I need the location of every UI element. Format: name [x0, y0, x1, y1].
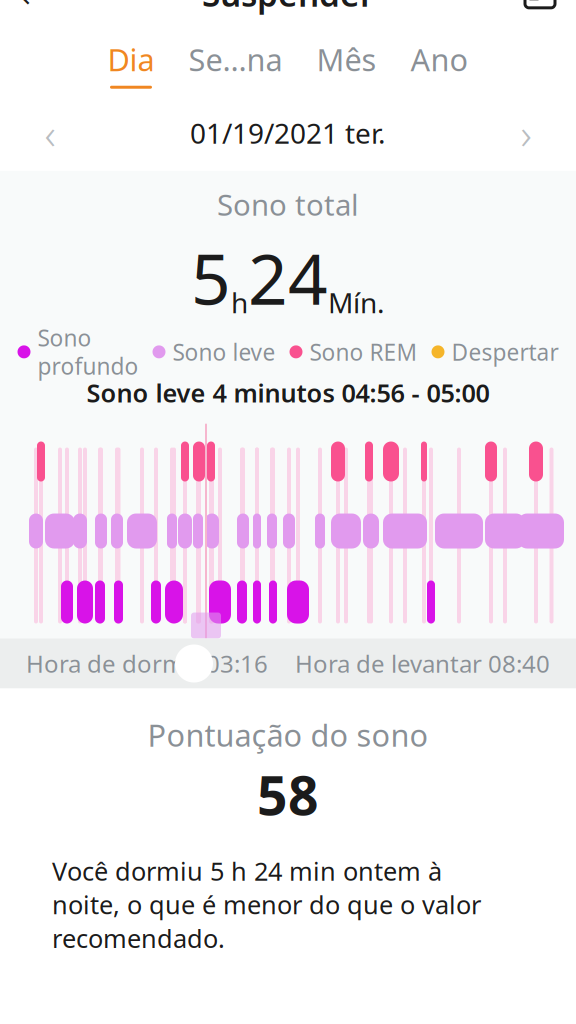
staticText: Se...na [188, 39, 282, 80]
button[interactable]: Mês [310, 31, 382, 89]
staticText: h [231, 284, 248, 321]
staticText: Sono REM [309, 337, 417, 367]
button[interactable]: Next day [496, 106, 556, 160]
staticText: › [520, 104, 531, 161]
staticText: 5 [191, 232, 231, 324]
button[interactable]: Se...na [182, 31, 288, 89]
staticText: Você dormiu 5 h 24 min ontem à noite, o … [52, 854, 481, 955]
button[interactable]: Calendar [512, 0, 568, 22]
staticText: ‹ [44, 104, 55, 161]
staticText: Sono [37, 323, 91, 353]
staticText: Sono leve 4 minutos 04:56 - 05:00 [86, 376, 489, 409]
button[interactable]: Back [8, 0, 64, 22]
staticText: ← [17, 0, 55, 20]
staticText: Mín. [328, 284, 385, 321]
staticText: Ano [410, 39, 468, 80]
staticText: 24 [248, 232, 328, 324]
staticText: Sono leve [172, 337, 275, 367]
staticText: Suspender [202, 0, 374, 16]
staticText: 58 [257, 759, 319, 830]
staticText: Hora de dormir 03:16 [26, 648, 268, 679]
staticText: Despertar [451, 337, 558, 367]
button[interactable]: Dia [101, 31, 160, 89]
staticText: Sono total [217, 185, 359, 224]
staticText: Pontuação do sono [147, 714, 428, 755]
staticText: Mês [316, 39, 376, 80]
staticText: profundo [37, 351, 138, 381]
staticText: Dia [107, 39, 154, 80]
staticText: 01/19/2021 ter. [190, 114, 386, 151]
staticText: Hora de levantar 08:40 [295, 648, 550, 679]
button[interactable]: Ano [404, 31, 474, 89]
button[interactable]: Previous day [20, 106, 80, 160]
